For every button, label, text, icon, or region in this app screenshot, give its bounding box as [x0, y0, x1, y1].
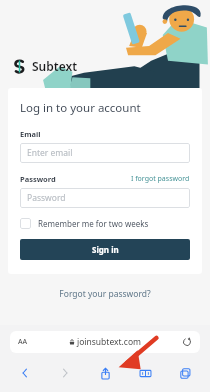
staticText: Log in to your account [20, 100, 141, 116]
button[interactable]: Password [20, 188, 190, 208]
button[interactable]: Forgot your password? [59, 288, 151, 300]
staticText: Sign in [92, 244, 119, 255]
button[interactable]: Remember me for two weeks [20, 218, 149, 229]
button[interactable]: Share [94, 362, 116, 384]
staticText: I forgot password [131, 174, 190, 184]
button[interactable]: Sign in [20, 239, 190, 260]
staticText: Remember me for two weeks [38, 218, 149, 229]
staticText: Password [20, 174, 56, 184]
button[interactable]: Tabs [174, 362, 196, 384]
staticText: joinsubtext.com [77, 336, 142, 348]
button[interactable]: Forward [54, 362, 76, 384]
staticText: Forgot your password? [59, 288, 151, 300]
staticText: Subtext [32, 58, 78, 74]
button[interactable]: Bookmarks [134, 362, 156, 384]
staticText: AA [18, 337, 28, 347]
button[interactable]: AA [10, 331, 200, 353]
staticText: Email [20, 129, 41, 139]
button[interactable]: Back [14, 362, 36, 384]
button[interactable]: Reload [182, 337, 192, 347]
button[interactable]: Enter email [20, 143, 190, 163]
staticText: Enter email [27, 147, 73, 159]
staticText: Password [27, 192, 66, 204]
button[interactable]: I forgot password [131, 174, 190, 184]
